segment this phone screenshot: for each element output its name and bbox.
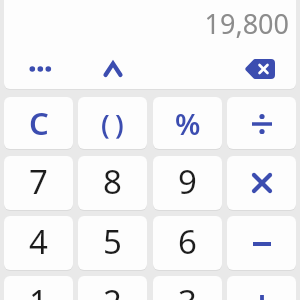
- staticText: 7: [29, 159, 48, 204]
- button[interactable]: [227, 97, 296, 149]
- staticText: 3: [178, 279, 197, 300]
- staticText: ): [115, 105, 124, 142]
- button[interactable]: 4: [4, 216, 73, 270]
- staticText: 2: [103, 279, 122, 300]
- button[interactable]: 2: [78, 276, 147, 300]
- button[interactable]: 6: [153, 216, 222, 270]
- button[interactable]: 5: [78, 216, 147, 270]
- button[interactable]: [227, 276, 296, 300]
- staticText: 9: [178, 159, 197, 204]
- staticText: 19,800: [204, 5, 289, 42]
- staticText: (: [101, 105, 110, 142]
- button[interactable]: [101, 56, 125, 80]
- staticText: 4: [29, 219, 48, 264]
- staticText: C: [29, 102, 49, 144]
- button[interactable]: [245, 59, 275, 79]
- staticText: 8: [103, 159, 122, 204]
- button[interactable]: [227, 216, 296, 270]
- button[interactable]: [26, 58, 56, 80]
- staticText: 1: [29, 279, 48, 300]
- button[interactable]: 1: [4, 276, 73, 300]
- staticText: 6: [178, 219, 197, 264]
- button[interactable]: 9: [153, 156, 222, 210]
- button[interactable]: 7: [4, 156, 73, 210]
- button[interactable]: 3: [153, 276, 222, 300]
- staticText: %: [175, 104, 201, 143]
- button[interactable]: [227, 156, 296, 210]
- button[interactable]: 8: [78, 156, 147, 210]
- button[interactable]: C: [4, 97, 73, 149]
- button[interactable]: %: [153, 97, 222, 149]
- button[interactable]: (: [78, 97, 147, 149]
- staticText: 5: [103, 219, 122, 264]
